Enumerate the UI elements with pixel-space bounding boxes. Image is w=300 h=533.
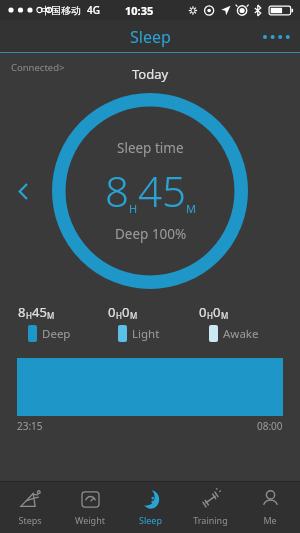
staticText: M: [47, 310, 55, 321]
staticText: Deep 100%: [115, 225, 187, 243]
button[interactable]: Sleep: [120, 481, 180, 533]
staticText: Today: [132, 65, 169, 83]
staticText: 45: [32, 303, 47, 321]
button[interactable]: Me: [240, 481, 300, 533]
staticText: Deep: [42, 326, 71, 342]
staticText: Me: [263, 514, 277, 526]
button[interactable]: Previous day: [8, 176, 38, 206]
staticText: Sleep: [130, 26, 171, 48]
button[interactable]: Connected>: [11, 61, 65, 74]
staticText: M: [130, 310, 138, 321]
staticText: M: [186, 201, 196, 216]
button[interactable]: Training: [180, 481, 240, 533]
staticText: 0: [122, 303, 130, 321]
staticText: Sleep: [139, 514, 162, 526]
staticText: 8: [105, 162, 129, 219]
button[interactable]: Steps: [0, 481, 60, 533]
staticText: 0: [213, 303, 221, 321]
staticText: 中国移动: [41, 4, 81, 17]
staticText: Awake: [223, 326, 259, 342]
staticText: M: [221, 310, 229, 321]
staticText: 8: [18, 303, 26, 321]
staticText: Steps: [18, 514, 42, 526]
staticText: Light: [132, 326, 160, 342]
staticText: 45: [138, 162, 186, 219]
staticText: Training: [193, 514, 228, 526]
staticText: 4G: [87, 3, 100, 17]
staticText: 23:15: [17, 419, 43, 433]
staticText: H: [116, 310, 122, 321]
staticText: 0: [199, 303, 207, 321]
button[interactable]: 0: [199, 303, 290, 342]
staticText: 08:00: [257, 419, 283, 433]
button[interactable]: More options: [258, 23, 292, 51]
staticText: 10:35: [125, 3, 154, 18]
staticText: Sleep time: [117, 139, 184, 157]
button[interactable]: 8: [18, 303, 108, 342]
button[interactable]: Weight: [60, 481, 120, 533]
staticText: Weight: [75, 514, 105, 526]
staticText: H: [26, 310, 32, 321]
staticText: H: [207, 310, 213, 321]
button[interactable]: 0: [108, 303, 199, 342]
staticText: H: [129, 201, 138, 216]
staticText: 0: [108, 303, 116, 321]
